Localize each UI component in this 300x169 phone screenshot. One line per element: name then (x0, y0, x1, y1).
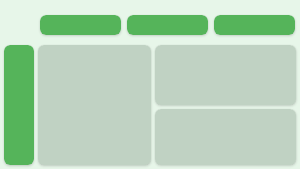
button[interactable]: Overview tab (40, 15, 121, 35)
button[interactable]: Activity tab (127, 15, 208, 35)
button[interactable]: Navigation rail (4, 45, 34, 165)
button[interactable]: Settings tab (214, 15, 295, 35)
